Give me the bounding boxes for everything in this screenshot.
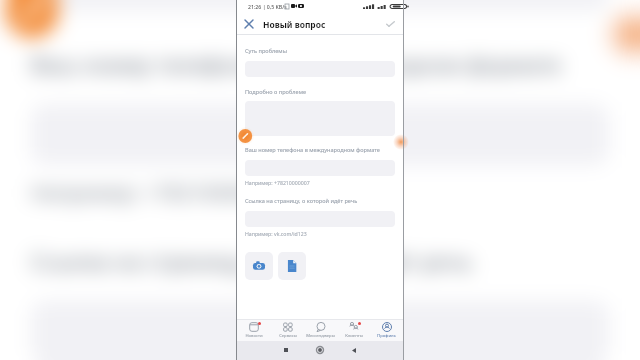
staticText: Ваш номер телефона в международном форма… [245,146,380,154]
staticText: Суть проблемы [245,47,287,55]
button[interactable]: Back [345,341,363,359]
staticText: Мессенджеры [306,333,335,339]
button[interactable]: Add photo [245,252,273,280]
staticText: Подробно о проблеме [245,88,307,96]
staticText: Например: +78210000007 [31,177,285,204]
button[interactable]: Сервисы [271,320,304,341]
button[interactable] [31,104,609,165]
staticText: Ссылка на страницу, о которой идёт речь [31,246,474,277]
button[interactable] [245,101,395,136]
staticText: Сервисы [279,333,297,339]
button[interactable]: Новости [237,320,271,341]
staticText: Например: +78210000007 [245,179,310,186]
button[interactable]: Submit question [381,15,399,33]
button[interactable]: Close [240,15,258,33]
staticText: Например: vk.com/id123 [245,230,307,237]
staticText: Ваш номер телефона в международном форма… [31,50,563,81]
staticText: Новости [245,333,263,339]
staticText: Ссылка на страницу, о которой идёт речь [245,197,358,205]
button[interactable]: Recents [277,341,295,359]
staticText: Клиенты [345,333,363,339]
button[interactable]: Мессенджеры [304,320,337,341]
button[interactable]: Клиенты [337,320,370,341]
staticText: Профиль [377,333,396,339]
button[interactable]: Attach file [278,252,306,280]
button[interactable] [31,0,609,11]
button[interactable]: Home [311,341,329,359]
staticText: 21:26 | 0,5 KB/s [248,3,287,10]
button[interactable] [31,300,609,360]
staticText: Новый вопрос [263,19,326,30]
button[interactable]: Профиль [370,320,403,341]
